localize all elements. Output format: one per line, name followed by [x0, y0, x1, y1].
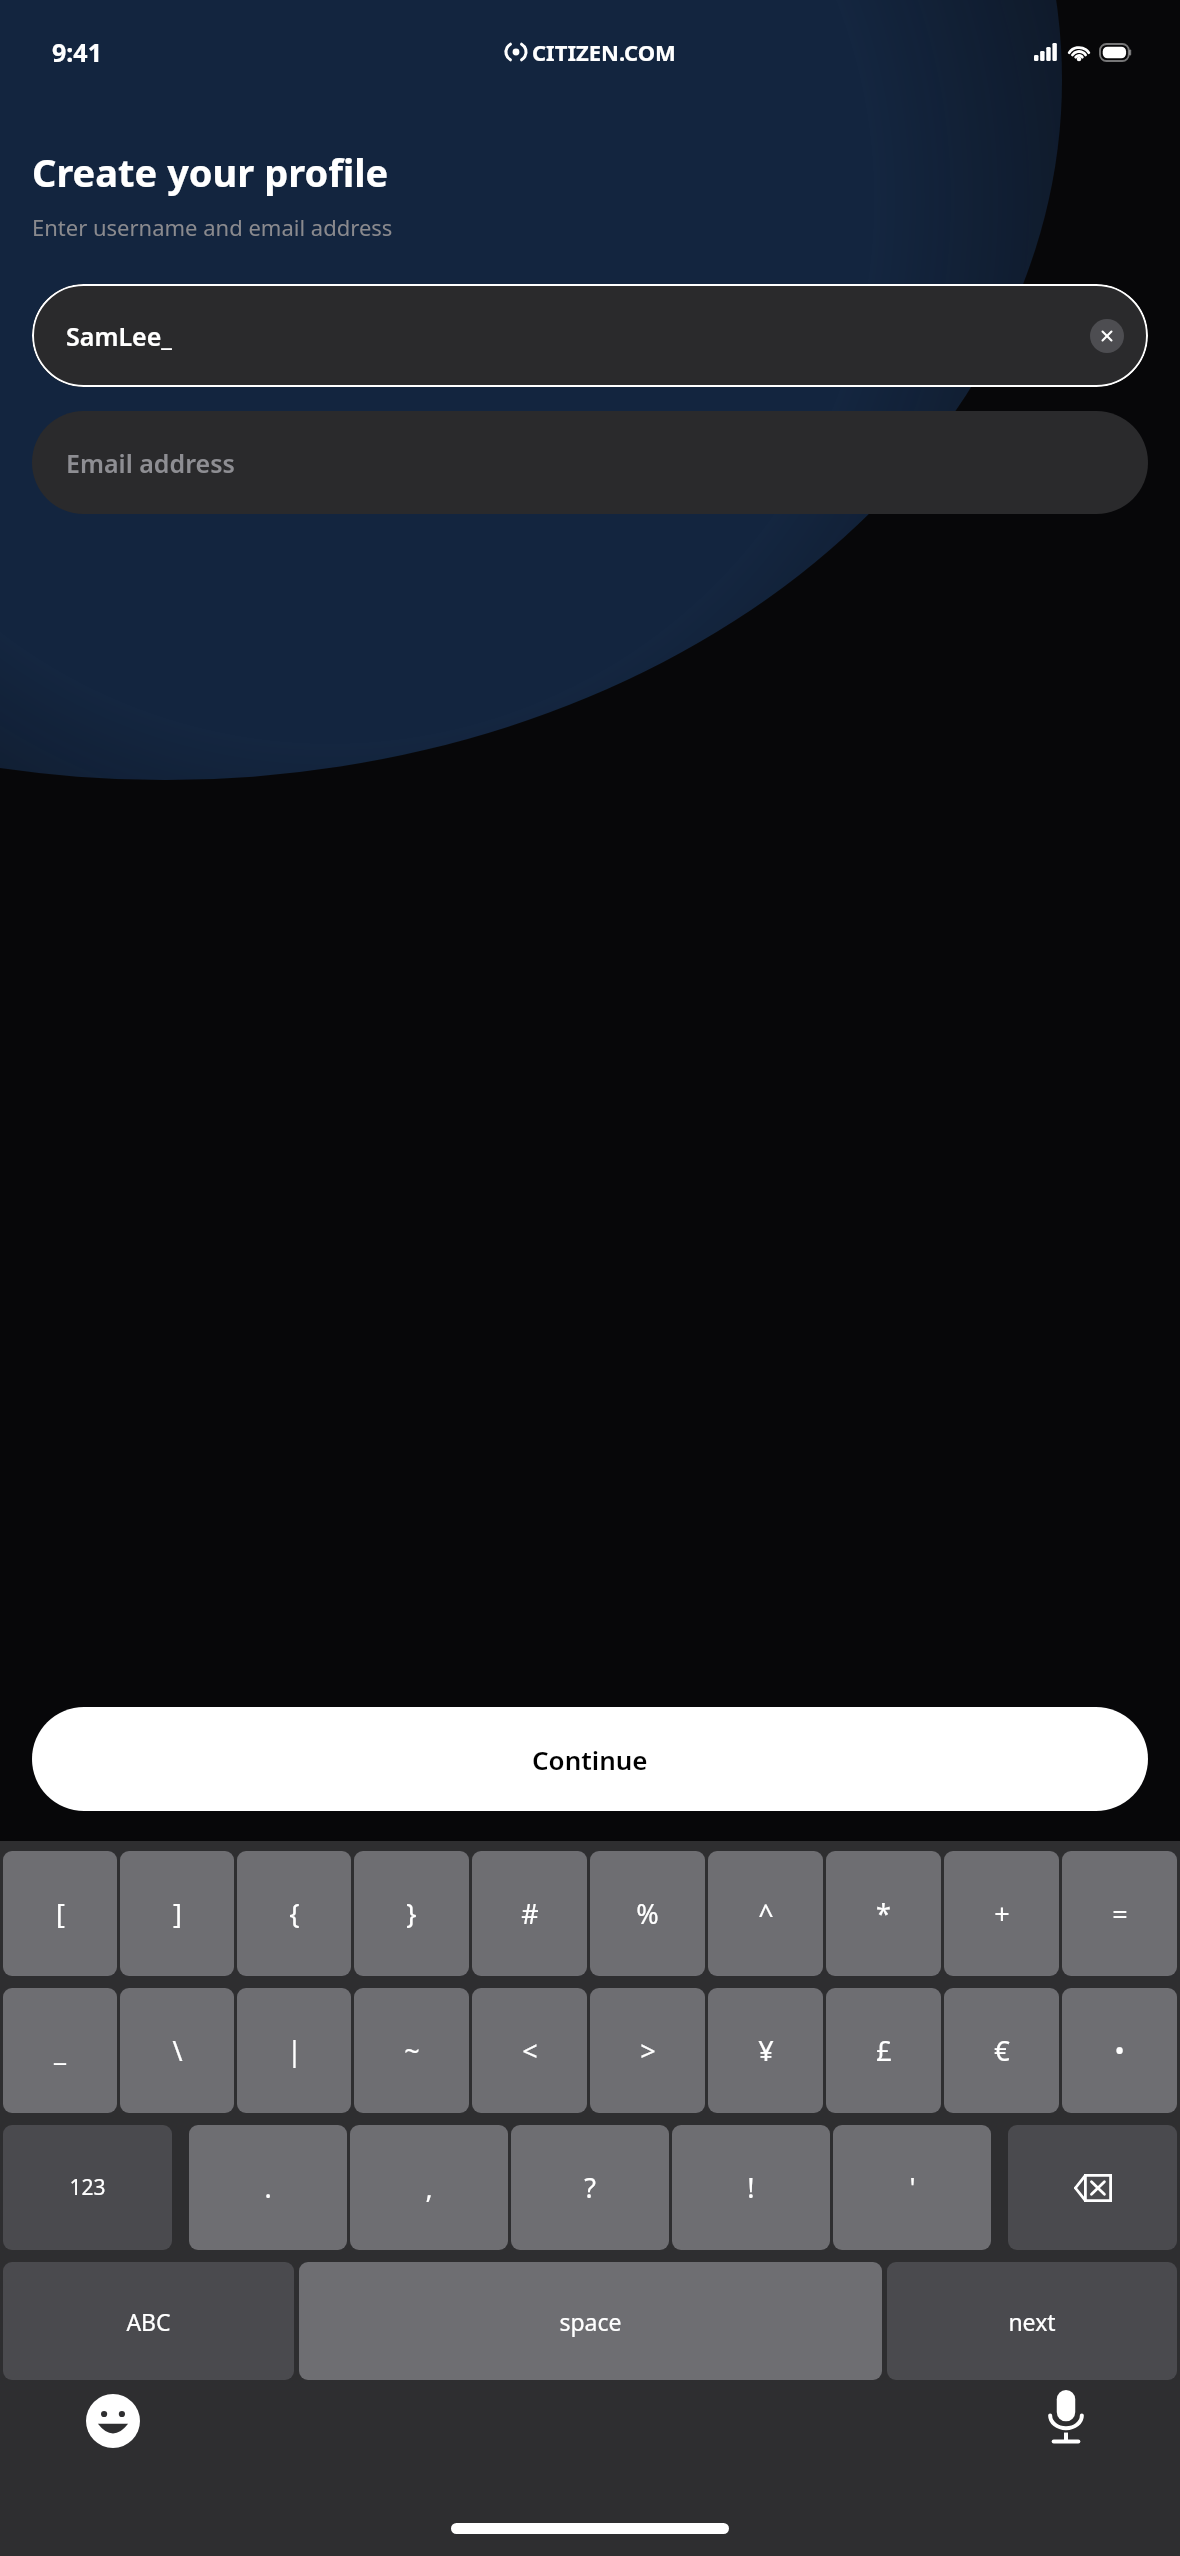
button[interactable]: \	[120, 1988, 234, 2113]
button[interactable]: _	[3, 1988, 117, 2113]
button[interactable]: Emoji keyboard	[86, 2394, 140, 2448]
button[interactable]: '	[833, 2125, 991, 2250]
staticText: *	[876, 1895, 891, 1932]
staticText: .	[264, 2169, 272, 2206]
button[interactable]: !	[672, 2125, 830, 2250]
staticText: [	[56, 1895, 65, 1932]
staticText: €	[994, 2032, 1010, 2069]
button[interactable]: {	[237, 1851, 351, 1976]
staticText: +	[994, 1895, 1010, 1932]
button[interactable]: >	[590, 1988, 705, 2113]
button[interactable]: ]	[120, 1851, 234, 1976]
button[interactable]: .	[189, 2125, 347, 2250]
button[interactable]: ?	[511, 2125, 669, 2250]
staticText: %	[636, 1895, 659, 1932]
staticText: ¥	[758, 2032, 774, 2069]
button[interactable]: ,	[350, 2125, 508, 2250]
staticText: Enter username and email address	[32, 212, 393, 242]
button[interactable]: Clear text	[1090, 319, 1124, 353]
staticText: !	[747, 2169, 755, 2206]
button[interactable]: ABC	[3, 2262, 294, 2380]
staticText: <	[522, 2032, 538, 2069]
staticText: 9:41	[52, 35, 102, 69]
button[interactable]: <	[472, 1988, 587, 2113]
staticText: \	[172, 2032, 183, 2069]
staticText: SamLee_	[66, 319, 172, 353]
button[interactable]: =	[1062, 1851, 1177, 1976]
staticText: ~	[404, 2032, 420, 2069]
button[interactable]: %	[590, 1851, 705, 1976]
staticText: =	[1112, 1895, 1128, 1932]
staticText: CITIZEN.COM	[532, 37, 676, 67]
staticText: ^	[758, 1895, 774, 1932]
button[interactable]: £	[826, 1988, 941, 2113]
button[interactable]: |	[237, 1988, 351, 2113]
staticText: Email address	[66, 446, 235, 480]
button[interactable]: }	[354, 1851, 469, 1976]
staticText: ,	[425, 2169, 433, 2206]
button[interactable]: Backspace	[1008, 2125, 1177, 2250]
staticText: '	[909, 2169, 916, 2206]
staticText: Create your profile	[32, 146, 389, 198]
staticText: >	[640, 2032, 656, 2069]
button[interactable]: *	[826, 1851, 941, 1976]
button[interactable]: €	[944, 1988, 1059, 2113]
staticText: {	[289, 1895, 300, 1932]
button[interactable]: 123	[3, 2125, 172, 2250]
button[interactable]: #	[472, 1851, 587, 1976]
button[interactable]: •	[1062, 1988, 1177, 2113]
staticText: 123	[69, 2173, 106, 2202]
staticText: £	[876, 2032, 892, 2069]
button[interactable]: next	[887, 2262, 1177, 2380]
button[interactable]: ~	[354, 1988, 469, 2113]
button[interactable]: ^	[708, 1851, 823, 1976]
staticText: #	[521, 1895, 539, 1932]
staticText: ?	[584, 2169, 596, 2206]
button[interactable]: space	[299, 2262, 882, 2380]
button[interactable]: [	[3, 1851, 117, 1976]
staticText: ]	[173, 1895, 182, 1932]
staticText: ABC	[126, 2306, 171, 2337]
staticText: space	[559, 2306, 622, 2337]
button[interactable]: Email address	[32, 411, 1148, 514]
staticText: _	[54, 2032, 66, 2069]
staticText: next	[1008, 2306, 1056, 2337]
staticText: •	[1114, 2032, 1125, 2069]
button[interactable]: ¥	[708, 1988, 823, 2113]
staticText: Continue	[532, 1742, 648, 1777]
staticText: }	[406, 1895, 417, 1932]
button[interactable]: Voice input	[1038, 2390, 1094, 2446]
staticText: |	[287, 2032, 302, 2069]
button[interactable]: Continue	[32, 1707, 1148, 1811]
button[interactable]: SamLee_	[32, 284, 1148, 387]
button[interactable]: +	[944, 1851, 1059, 1976]
